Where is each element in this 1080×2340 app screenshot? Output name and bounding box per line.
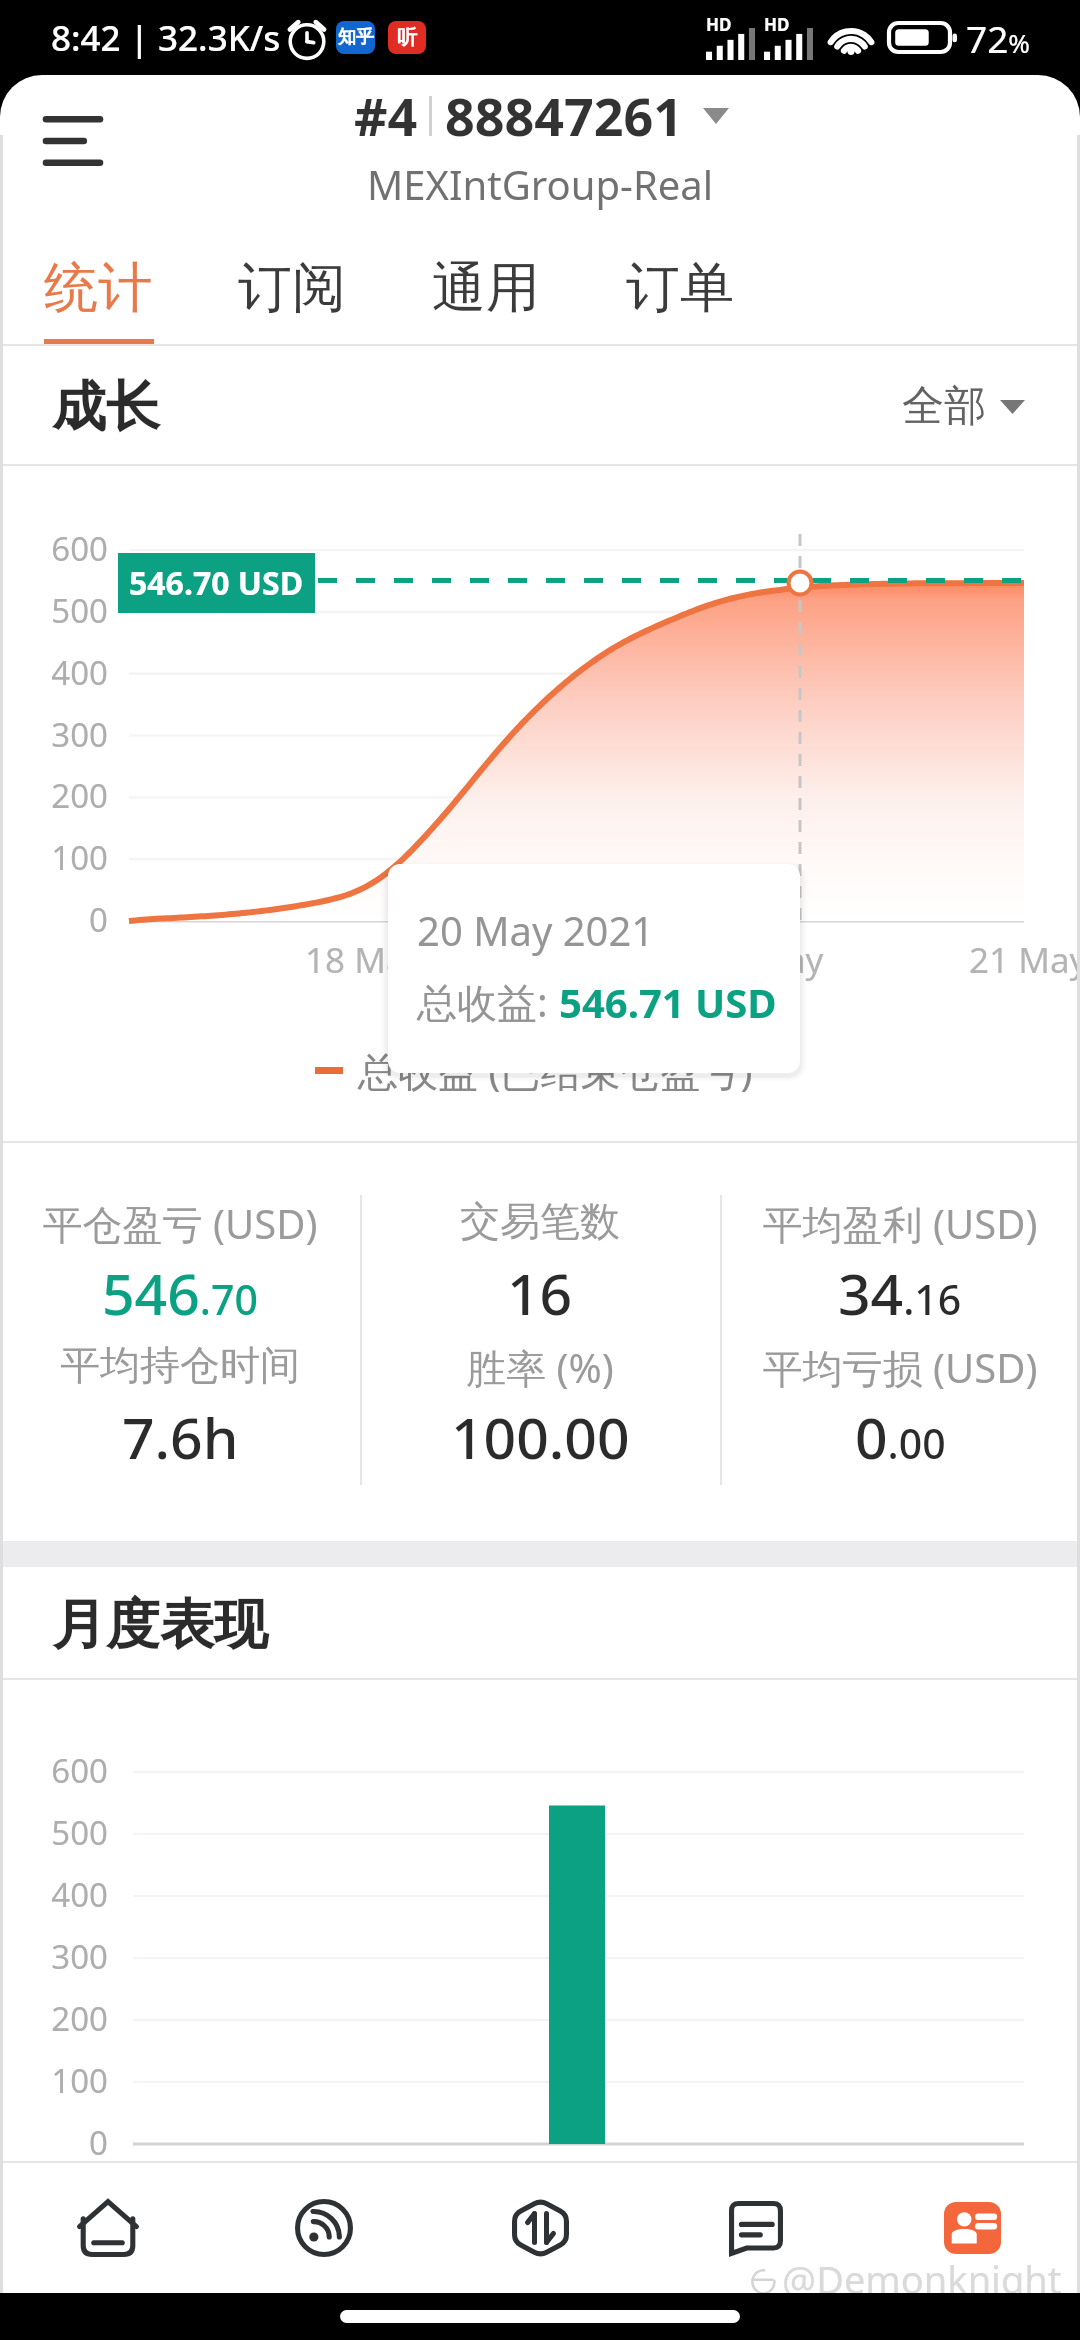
button[interactable]: 订阅 <box>198 215 386 346</box>
staticText: 100.00 <box>451 1398 630 1476</box>
staticText: 88847261 <box>445 80 683 151</box>
staticText: 听 <box>397 25 417 50</box>
staticText: 546.70 USD <box>129 561 304 605</box>
staticText: 月度表现 <box>52 1591 268 1659</box>
staticText: 18 May <box>305 936 424 984</box>
staticText: HD <box>764 13 790 36</box>
button[interactable]: #4 <box>352 80 731 151</box>
staticText: 400 <box>26 1872 108 1917</box>
staticText: 21 May <box>969 936 1080 984</box>
staticText: 20 May <box>705 936 824 984</box>
button[interactable]: 统计 <box>4 215 192 346</box>
staticText: 平仓盈亏 (USD) <box>0 1196 360 1251</box>
button[interactable]: Menu <box>23 91 123 191</box>
staticText: 200 <box>26 1996 108 2041</box>
staticText: 通用 <box>432 254 540 322</box>
button[interactable]: 通用 <box>392 215 580 346</box>
staticText: 平均持仓时间 <box>0 1340 360 1390</box>
button[interactable]: Home <box>0 2163 216 2293</box>
staticText: 胜率 (%) <box>360 1340 720 1395</box>
staticText: 知乎 <box>338 26 374 49</box>
staticText: 500 <box>26 1810 108 1855</box>
staticText: 平均亏损 (USD) <box>720 1340 1080 1395</box>
staticText: 546.70 <box>102 1254 258 1332</box>
staticText: 16 <box>507 1254 573 1332</box>
button[interactable]: Signals <box>216 2163 432 2293</box>
staticText: #4 <box>354 80 418 151</box>
staticText: 订阅 <box>238 254 346 322</box>
staticText: 订单 <box>626 254 734 322</box>
staticText: 200 <box>26 773 108 818</box>
staticText: 0 <box>26 897 108 942</box>
staticText: 72% <box>966 13 1030 63</box>
staticText: 0.00 <box>855 1398 946 1476</box>
button[interactable]: Accounts <box>864 2163 1080 2293</box>
staticText: 8:42 | 32.3K/s <box>51 14 281 62</box>
staticText: 400 <box>26 650 108 695</box>
staticText: 交易笔数 <box>360 1196 720 1246</box>
staticText: 20 May 2021 <box>417 903 655 957</box>
staticText: 100 <box>26 2058 108 2103</box>
staticText: 0 <box>26 2120 108 2165</box>
staticText: 统计 <box>44 254 152 322</box>
staticText: 总收益 (已结束仓盈亏) <box>358 1043 753 1098</box>
button[interactable]: Messages <box>648 2163 864 2293</box>
staticText: 600 <box>26 1748 108 1793</box>
staticText: 平均盈利 (USD) <box>720 1196 1080 1251</box>
staticText: 成长 <box>52 373 160 441</box>
staticText: 34.16 <box>838 1254 962 1332</box>
staticText: 100 <box>26 835 108 880</box>
staticText: 全部 <box>902 380 986 433</box>
staticText: @Demonknight <box>782 2253 1062 2293</box>
button[interactable]: 全部 <box>902 380 1025 433</box>
staticText: 总收益: <box>417 974 559 1029</box>
staticText: 300 <box>26 1934 108 1979</box>
staticText: 500 <box>26 588 108 633</box>
staticText: 546.71 USD <box>559 975 777 1029</box>
staticText: HD <box>706 13 732 36</box>
staticText: 300 <box>26 712 108 757</box>
staticText: 7.6h <box>122 1398 239 1476</box>
staticText: 600 <box>26 526 108 571</box>
button[interactable]: 订单 <box>586 215 774 346</box>
button[interactable]: Trade <box>432 2163 648 2293</box>
staticText: MEXIntGroup-Real <box>367 157 714 211</box>
